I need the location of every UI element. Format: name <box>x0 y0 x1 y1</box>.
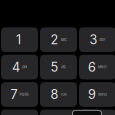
staticText: 1 <box>16 32 21 47</box>
button[interactable]: 6 <box>79 55 115 79</box>
staticText: 4 <box>12 59 20 75</box>
button[interactable]: Call <box>72 110 101 115</box>
staticText: 6 <box>88 59 96 75</box>
staticText: JKL <box>60 65 66 69</box>
button[interactable]: 3 <box>79 27 115 52</box>
staticText: PQRS <box>19 92 28 96</box>
button[interactable]: 7 <box>1 82 38 107</box>
button[interactable]: 2 <box>40 27 77 52</box>
staticText: 2 <box>50 32 58 47</box>
staticText: ABC <box>60 38 66 42</box>
staticText: DEF <box>99 38 105 42</box>
staticText: 5 <box>50 59 58 75</box>
button[interactable]: # <box>79 109 115 115</box>
button[interactable]: 1 <box>1 27 38 52</box>
staticText: 8 <box>50 87 58 102</box>
staticText: 3 <box>89 32 97 47</box>
button[interactable]: 5 <box>40 55 77 79</box>
staticText: MNO <box>98 65 107 69</box>
button[interactable]: * <box>1 109 38 115</box>
button[interactable]: 0 <box>40 109 77 115</box>
staticText: WXYZ <box>98 92 107 96</box>
staticText: 7 <box>10 87 17 102</box>
button[interactable]: 4 <box>1 55 38 79</box>
staticText: 9 <box>88 87 96 102</box>
button[interactable]: 8 <box>40 82 77 107</box>
staticText: GHI <box>22 65 27 69</box>
button[interactable]: 9 <box>79 82 115 107</box>
staticText: TUV <box>60 92 66 96</box>
